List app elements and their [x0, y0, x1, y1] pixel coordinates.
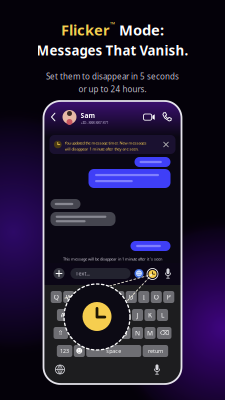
- button[interactable]: H: [119, 309, 131, 321]
- staticText: ☻: [76, 347, 83, 355]
- button[interactable]: Z: [69, 327, 81, 339]
- button[interactable]: I: [138, 291, 149, 303]
- staticText: will disappear 1 minute after they are s…: [64, 146, 138, 152]
- staticText: space: [106, 347, 121, 355]
- button[interactable]: Q: [51, 291, 62, 303]
- staticText: P: [167, 293, 171, 301]
- button[interactable]: P: [163, 291, 174, 303]
- staticText: A: [60, 311, 64, 319]
- button[interactable]: X: [82, 327, 93, 339]
- button[interactable]: K: [144, 309, 156, 321]
- button[interactable]: B: [119, 327, 131, 339]
- button[interactable]: ☻: [74, 345, 85, 357]
- button[interactable]: A: [57, 309, 68, 321]
- staticText: B: [123, 329, 127, 337]
- button[interactable]: Stickers: [134, 269, 143, 278]
- button[interactable]: Y: [113, 291, 124, 303]
- button[interactable]: Dictate: [153, 364, 160, 375]
- button[interactable]: C: [94, 327, 106, 339]
- button[interactable]: 123: [57, 345, 72, 357]
- staticText: Q: [54, 293, 59, 301]
- button[interactable]: Dismiss: [162, 141, 169, 148]
- button[interactable]: return: [143, 345, 168, 357]
- staticText: Sam: [80, 111, 95, 120]
- button[interactable]: Disappearing messages timer: [146, 268, 158, 280]
- staticText: This message will be disappear in 1 minu…: [63, 256, 162, 262]
- staticText: Mode:: [115, 20, 164, 39]
- button[interactable]: M: [144, 327, 156, 339]
- staticText: +ID- 888 887 871: [80, 120, 108, 125]
- staticText: 123: [60, 347, 69, 355]
- button[interactable]: J: [132, 309, 143, 321]
- staticText: return: [148, 347, 163, 355]
- staticText: Flicker: [61, 20, 110, 39]
- staticText: U: [129, 293, 134, 301]
- button[interactable]: Video call: [143, 111, 155, 123]
- button[interactable]: Audio call: [161, 111, 172, 123]
- button[interactable]: W: [63, 291, 74, 303]
- staticText: ☻: [135, 270, 142, 277]
- staticText: O: [154, 293, 159, 301]
- staticText: W: [66, 293, 72, 301]
- staticText: G: [110, 311, 115, 319]
- button[interactable]: E: [76, 291, 87, 303]
- staticText: L: [161, 311, 164, 319]
- button[interactable]: F: [94, 309, 106, 321]
- staticText: Text...: [75, 270, 89, 277]
- staticText: N: [135, 329, 140, 337]
- staticText: or up to 24 hours.: [78, 84, 146, 94]
- staticText: ™: [110, 20, 115, 29]
- button[interactable]: U: [126, 291, 137, 303]
- staticText: F: [98, 311, 101, 319]
- staticText: C: [98, 329, 102, 337]
- button[interactable]: ⌫: [157, 327, 171, 339]
- staticText: Messages That Vanish.: [36, 41, 188, 59]
- staticText: M: [147, 329, 153, 337]
- button[interactable]: N: [132, 327, 143, 339]
- staticText: I: [143, 293, 145, 301]
- button[interactable]: D: [82, 309, 93, 321]
- button[interactable]: L: [157, 309, 168, 321]
- staticText: ⇧: [58, 329, 64, 337]
- button[interactable]: Record voice message: [164, 268, 171, 279]
- staticText: ⌫: [160, 329, 169, 337]
- button[interactable]: G: [107, 309, 118, 321]
- button[interactable]: Back: [48, 110, 58, 124]
- staticText: K: [148, 311, 152, 319]
- staticText: J: [136, 311, 138, 319]
- staticText: Y: [117, 293, 121, 301]
- button[interactable]: R: [88, 291, 99, 303]
- button[interactable]: O: [151, 291, 162, 303]
- button[interactable]: Change keyboard: [55, 365, 64, 374]
- staticText: You updated the message timer. New messa…: [64, 140, 146, 145]
- button[interactable]: space: [86, 345, 141, 357]
- button[interactable]: Add attachment: [53, 268, 64, 279]
- button[interactable]: ⇧: [54, 327, 68, 339]
- staticText: Set them to disappear in 5 seconds: [46, 71, 179, 82]
- button[interactable]: T: [101, 291, 112, 303]
